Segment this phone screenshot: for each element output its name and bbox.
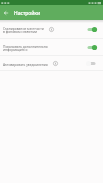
button[interactable]: Активировать уведомления — [0, 56, 103, 71]
button[interactable]: Сканирование местности в фоновом слежени… — [0, 20, 103, 39]
button[interactable]: Toggle — [85, 25, 98, 34]
button[interactable]: Info — [49, 27, 54, 32]
button[interactable]: Toggle — [85, 43, 98, 52]
button[interactable]: Показывать дополнительно информацию о — [0, 39, 103, 56]
staticText: Сканирование местности в фоновом слежени… — [3, 26, 44, 34]
staticText: Активировать уведомления — [3, 62, 48, 66]
staticText: Показывать дополнительно информацию о — [3, 44, 48, 52]
staticText: Настройки — [14, 10, 41, 17]
button[interactable]: Toggle — [85, 59, 98, 68]
button[interactable]: Back — [0, 5, 11, 20]
button[interactable]: Info — [53, 61, 58, 66]
